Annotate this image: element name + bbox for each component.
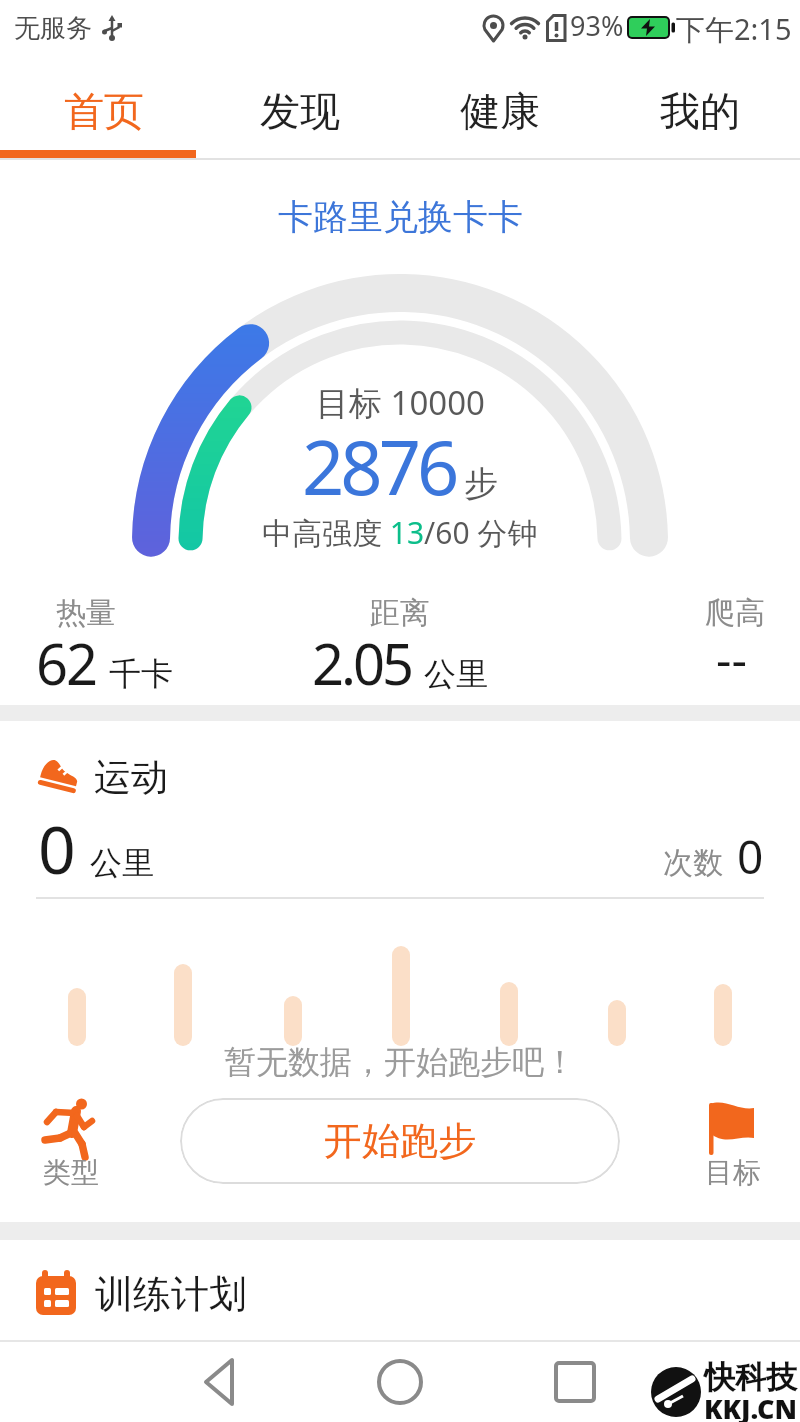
staticText: 距离	[370, 594, 430, 632]
staticText: 开始跑步	[324, 1117, 476, 1165]
staticText: 千卡	[109, 654, 173, 694]
button[interactable]: 健康	[430, 76, 570, 146]
staticText: 0	[737, 825, 764, 888]
staticText: 公里	[90, 843, 154, 883]
button[interactable]	[40, 1092, 96, 1160]
button[interactable]	[543, 1350, 607, 1414]
staticText: 无服务	[14, 12, 92, 45]
staticText: 类型	[43, 1155, 99, 1190]
staticText: --	[716, 626, 747, 691]
staticText: KKJ.CN	[704, 1390, 798, 1422]
staticText: 健康	[460, 86, 540, 136]
button[interactable]: 发现	[230, 76, 370, 146]
staticText: 93%	[570, 7, 624, 44]
button[interactable]	[190, 1350, 254, 1414]
button[interactable]	[368, 1350, 432, 1414]
staticText: 暂无数据，开始跑步吧！	[224, 1042, 576, 1082]
staticText: 公里	[424, 654, 488, 694]
staticText: 快科技	[704, 1358, 797, 1397]
staticText: 训练计划	[95, 1270, 247, 1318]
staticText: 中高强度 13/60 分钟	[262, 512, 538, 553]
button[interactable]	[706, 1092, 758, 1158]
staticText: 0	[38, 803, 76, 893]
staticText: 下午2:15	[676, 9, 792, 49]
button[interactable]	[0, 1252, 800, 1332]
button[interactable]: 我的	[630, 76, 770, 146]
staticText: 2.05	[312, 625, 412, 701]
button[interactable]: 开始跑步	[180, 1098, 620, 1184]
staticText: 热量	[56, 594, 116, 632]
staticText: 步	[464, 462, 498, 505]
staticText: 发现	[260, 86, 340, 136]
staticText: 目标	[705, 1155, 761, 1190]
staticText: 次数	[663, 844, 723, 882]
button[interactable]: 卡路里兑换卡卡	[278, 195, 523, 239]
staticText: 爬高	[705, 594, 765, 632]
staticText: 2876	[302, 416, 456, 517]
staticText: 首页	[64, 86, 144, 136]
button[interactable]: 首页	[34, 76, 174, 146]
staticText: 目标 10000	[316, 380, 485, 425]
staticText: 运动	[94, 754, 168, 801]
staticText: 卡路里兑换卡卡	[278, 195, 523, 239]
staticText: 我的	[660, 86, 740, 136]
staticText: 62	[36, 625, 97, 701]
